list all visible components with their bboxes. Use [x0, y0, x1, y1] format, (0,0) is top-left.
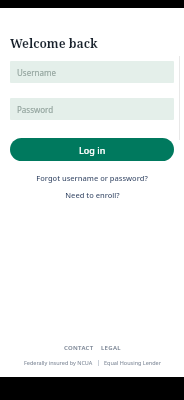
button[interactable]: Password	[10, 98, 174, 120]
button[interactable]: Log in	[10, 138, 174, 161]
staticText: Log in	[79, 144, 106, 156]
button[interactable]: CONTACT	[64, 344, 94, 352]
staticText: LEGAL	[101, 344, 121, 352]
staticText: Username	[17, 67, 56, 78]
staticText: Need to enroll?	[65, 190, 120, 200]
staticText: Forgot username or password?	[36, 173, 148, 183]
staticText: Equal Housing Lender	[104, 359, 161, 366]
button[interactable]: Forgot username or password?	[0, 173, 184, 183]
button[interactable]: LEGAL	[101, 344, 121, 352]
button[interactable]: Username	[10, 61, 174, 83]
staticText: Welcome back	[10, 35, 98, 51]
staticText: CONTACT	[64, 344, 94, 352]
button[interactable]: Need to enroll?	[0, 190, 184, 200]
staticText: Password	[17, 104, 54, 115]
staticText: Federally insured by NCUA	[24, 359, 93, 366]
